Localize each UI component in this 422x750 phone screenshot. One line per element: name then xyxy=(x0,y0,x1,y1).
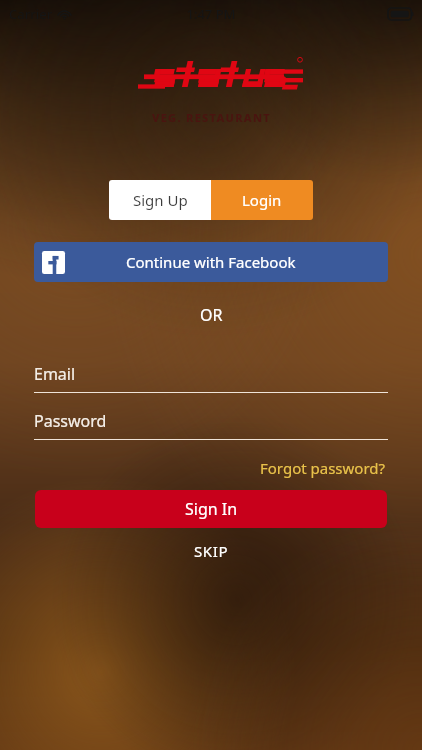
staticText: VEG. RESTAURANT xyxy=(152,110,271,125)
staticText: Sign Up xyxy=(133,190,188,210)
staticText: 1:47 PM xyxy=(186,5,236,23)
button[interactable]: Sign In xyxy=(35,490,387,528)
button[interactable]: Forgot password? xyxy=(258,456,388,480)
staticText: OR xyxy=(200,304,223,326)
staticText: Continue with Facebook xyxy=(126,252,296,272)
staticText: Forgot password? xyxy=(260,458,386,478)
button[interactable]: Password xyxy=(34,410,388,440)
staticText: Sign In xyxy=(185,498,238,520)
button[interactable]: SKIP xyxy=(180,537,243,565)
button[interactable]: Email xyxy=(34,363,388,393)
staticText: Email xyxy=(34,363,76,385)
staticText: Login xyxy=(242,190,282,210)
staticText: SKIP xyxy=(194,541,229,561)
button[interactable]: Continue with Facebook xyxy=(34,242,388,282)
button[interactable]: Login xyxy=(211,180,313,220)
button[interactable]: Sign Up xyxy=(109,180,211,220)
staticText: Password xyxy=(34,410,107,432)
staticText: Carrier xyxy=(9,5,53,23)
